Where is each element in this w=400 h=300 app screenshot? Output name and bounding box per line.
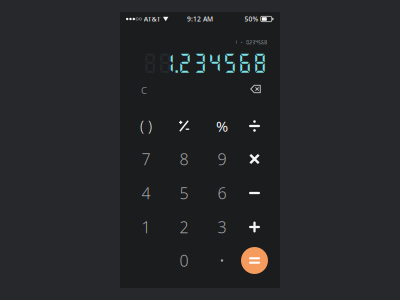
staticText: 1.234568 [160, 50, 267, 75]
button[interactable]: Equals [237, 244, 271, 276]
staticText: 9 [217, 148, 226, 170]
button[interactable]: 7 [129, 143, 163, 175]
button[interactable]: Delete [238, 73, 272, 105]
button[interactable]: C [135, 82, 153, 98]
staticText: 88 [142, 50, 172, 75]
staticText: 0 [179, 250, 188, 271]
button[interactable]: 1 [129, 211, 163, 243]
button[interactable]: 9 [205, 143, 239, 175]
staticText: 50% [244, 15, 258, 23]
staticText: 2 [179, 216, 188, 238]
staticText: 9:12 AM [187, 15, 213, 23]
button[interactable]: 8 [167, 143, 201, 175]
staticText: 8 [179, 148, 188, 170]
button[interactable]: 2 [167, 211, 201, 243]
button[interactable]: 3 [205, 211, 239, 243]
button[interactable]: Divide [237, 110, 271, 142]
button[interactable]: 4 [129, 177, 163, 209]
button[interactable]: % [205, 110, 239, 142]
staticText: 1 [141, 216, 150, 238]
staticText: 3 [217, 216, 226, 238]
staticText: 1 ÷ 0.234568 [234, 39, 267, 45]
button[interactable]: Plus minus [167, 110, 201, 142]
button[interactable]: Minus [237, 177, 271, 209]
button[interactable]: 0 [167, 244, 201, 276]
staticText: 5 [179, 182, 188, 204]
button[interactable]: 6 [205, 177, 239, 209]
staticText: AT&T [144, 15, 161, 23]
button[interactable]: 5 [167, 177, 201, 209]
staticText: % [216, 116, 228, 136]
staticText: C [141, 84, 147, 97]
staticText: ( ) [140, 116, 152, 136]
staticText: 6 [217, 182, 226, 204]
button[interactable]: ( ) [129, 110, 163, 142]
button[interactable]: Plus [237, 211, 271, 243]
button[interactable]: Multiply [237, 143, 271, 175]
staticText: 7 [141, 148, 150, 170]
staticText: 4 [141, 182, 150, 204]
button[interactable]: Decimal point [205, 244, 239, 276]
